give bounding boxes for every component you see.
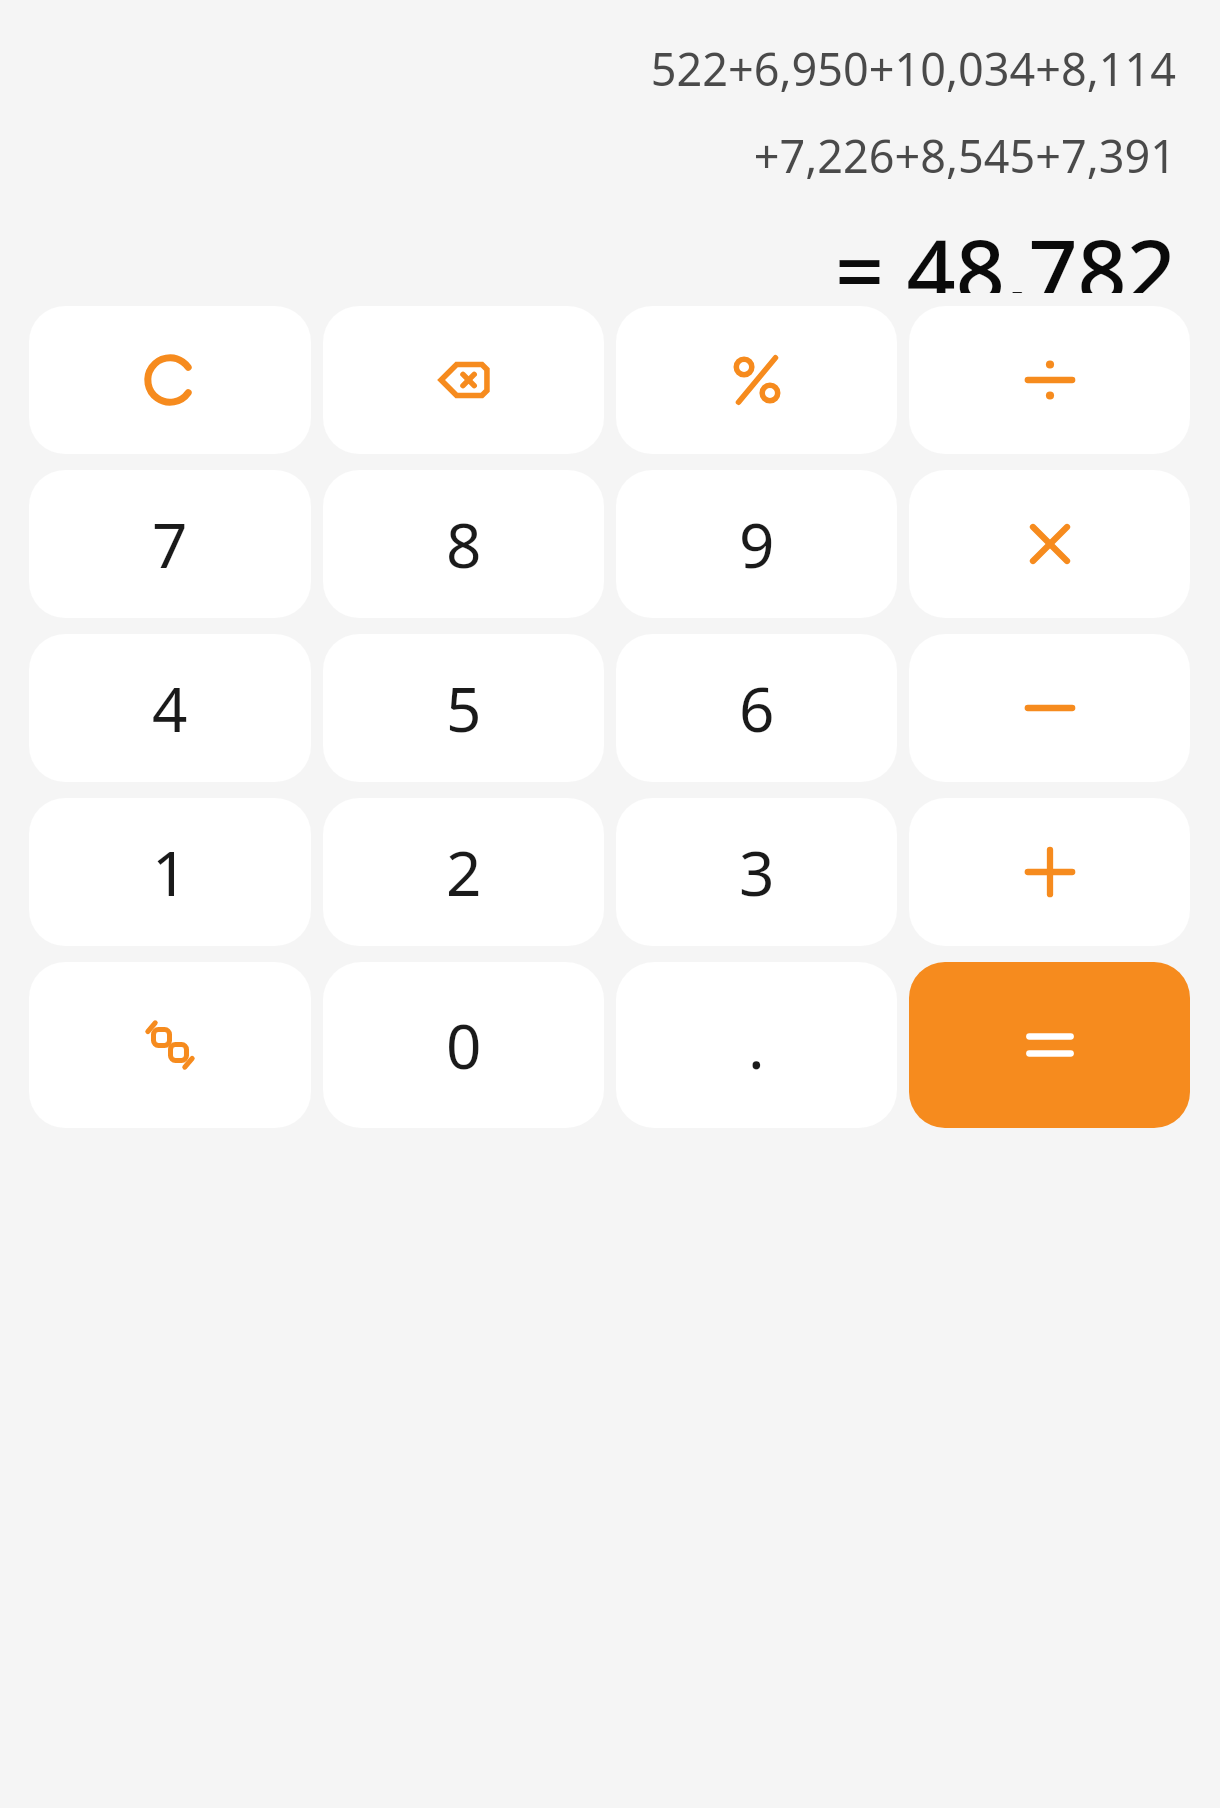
button[interactable]: 0: [323, 962, 604, 1128]
staticText: 3: [739, 830, 775, 914]
staticText: 2: [446, 830, 482, 914]
staticText: 4: [152, 666, 188, 750]
staticText: = 48,782: [835, 210, 1176, 293]
button[interactable]: Clear: [29, 306, 311, 454]
button[interactable]: Divide: [909, 306, 1190, 454]
staticText: .: [748, 1003, 765, 1087]
button[interactable]: Multiply: [909, 470, 1190, 618]
button[interactable]: 1: [29, 798, 311, 946]
staticText: 0: [446, 1003, 482, 1087]
button[interactable]: 6: [616, 634, 897, 782]
button[interactable]: 7: [29, 470, 311, 618]
button[interactable]: 4: [29, 634, 311, 782]
staticText: 8: [446, 502, 482, 586]
button[interactable]: 8: [323, 470, 604, 618]
button[interactable]: Plus: [909, 798, 1190, 946]
button[interactable]: 5: [323, 634, 604, 782]
staticText: 1: [152, 830, 188, 914]
button[interactable]: Percent: [616, 306, 897, 454]
button[interactable]: .: [616, 962, 897, 1128]
staticText: 6: [739, 666, 775, 750]
staticText: 7: [152, 502, 188, 586]
button[interactable]: Backspace: [323, 306, 604, 454]
staticText: 5: [446, 666, 482, 750]
button[interactable]: Unit converter: [29, 962, 311, 1128]
button[interactable]: Minus: [909, 634, 1190, 782]
button[interactable]: Equals: [909, 962, 1190, 1128]
button[interactable]: 9: [616, 470, 897, 618]
button[interactable]: 3: [616, 798, 897, 946]
staticText: +7,226+8,545+7,391: [753, 125, 1176, 186]
staticText: 9: [739, 502, 775, 586]
staticText: 522+6,950+10,034+8,114: [650, 38, 1176, 99]
button[interactable]: 2: [323, 798, 604, 946]
